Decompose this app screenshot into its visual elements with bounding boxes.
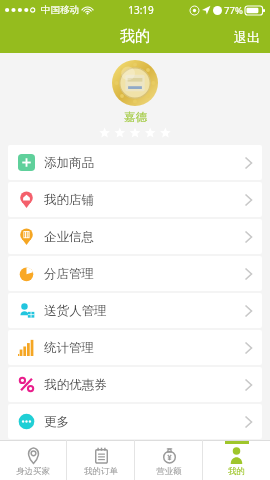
staticText: 中国移动 [41,4,79,16]
staticText: 13:19 [128,3,154,17]
staticText: 我的 [120,27,150,46]
button[interactable]: 分店管理 [8,256,262,291]
staticText: 我的店铺 [44,192,94,208]
staticText: 我的 [228,466,245,477]
button[interactable]: 我的店铺 [8,182,262,217]
staticText: 分店管理 [44,266,94,282]
button[interactable]: 身边买家 [0,440,66,480]
button[interactable]: 统计管理 [8,330,262,365]
staticText: 统计管理 [44,340,94,356]
staticText: 退出 [234,29,260,45]
staticText: 我的优惠券 [44,377,107,393]
button[interactable]: 企业信息 [8,219,262,254]
staticText: 添加商品 [44,155,94,171]
staticText: 送货人管理 [44,303,107,319]
staticText: 企业信息 [44,229,94,245]
button[interactable]: 退出 [224,23,270,51]
button[interactable]: 我的订单 [67,440,134,480]
button[interactable]: 添加商品 [8,145,262,180]
button[interactable]: 更多 [8,404,262,439]
staticText: 更多 [44,414,69,430]
button[interactable]: 我的优惠券 [8,367,262,402]
staticText: 身边买家 [16,466,50,477]
staticText: 77% [224,4,243,17]
button[interactable]: 送货人管理 [8,293,262,328]
button[interactable]: 营业额 [135,440,202,480]
button[interactable]: 我的 [203,440,270,480]
staticText: 营业额 [156,466,182,477]
staticText: 我的订单 [84,466,118,477]
staticText: 嘉德 [124,110,147,124]
